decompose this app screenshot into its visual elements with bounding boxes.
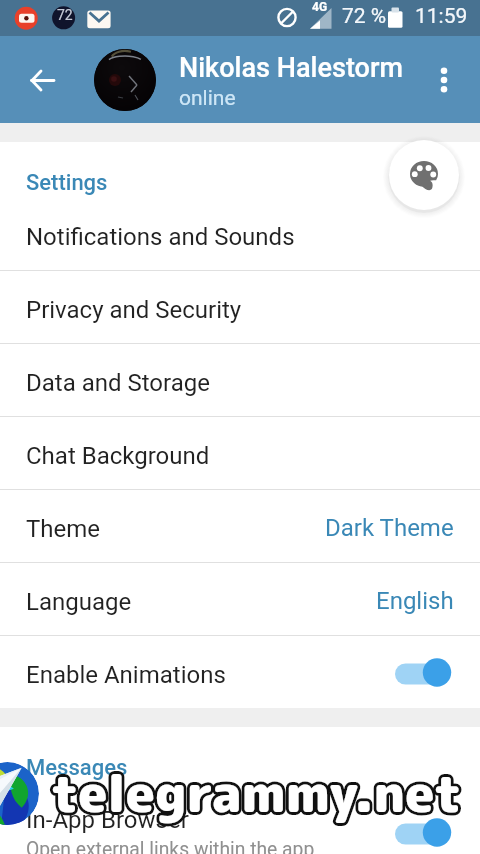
staticText: Theme: [26, 515, 101, 543]
button[interactable]: More options: [420, 56, 468, 104]
button[interactable]: Back: [18, 56, 66, 104]
button[interactable]: Enable Animations: [0, 636, 480, 708]
staticText: Enable Animations: [26, 661, 226, 689]
staticText: online: [179, 86, 236, 111]
staticText: English: [376, 587, 454, 615]
staticText: 72 %: [342, 4, 387, 29]
staticText: Notifications and Sounds: [26, 223, 295, 251]
staticText: Chat Background: [26, 442, 210, 470]
button[interactable]: Privacy and Security: [0, 271, 480, 343]
staticText: In-App Browser: [26, 806, 189, 834]
button[interactable]: Notifications and Sounds: [0, 198, 480, 270]
staticText: Language: [26, 588, 132, 616]
button[interactable]: Change theme: [389, 140, 459, 210]
staticText: Messages: [26, 755, 128, 781]
staticText: 72: [57, 7, 73, 23]
staticText: 4G: [312, 0, 328, 14]
staticText: Data and Storage: [26, 369, 210, 397]
staticText: telegrammy.net: [51, 758, 462, 828]
staticText: Nikolas Halestorm: [179, 52, 403, 84]
button[interactable]: Data and Storage: [0, 344, 480, 416]
button[interactable]: Theme: [0, 490, 480, 562]
button[interactable]: Profile photo: [94, 49, 156, 111]
button[interactable]: In-App Browser: [0, 783, 480, 854]
staticText: Open external links within the app: [26, 838, 315, 854]
staticText: Settings: [26, 170, 108, 196]
staticText: Privacy and Security: [26, 296, 242, 324]
button[interactable]: Language: [0, 563, 480, 635]
staticText: Dark Theme: [325, 514, 454, 542]
staticText: telegrammy.net: [51, 758, 462, 828]
staticText: 11:59: [415, 4, 468, 29]
button[interactable]: Chat Background: [0, 417, 480, 489]
